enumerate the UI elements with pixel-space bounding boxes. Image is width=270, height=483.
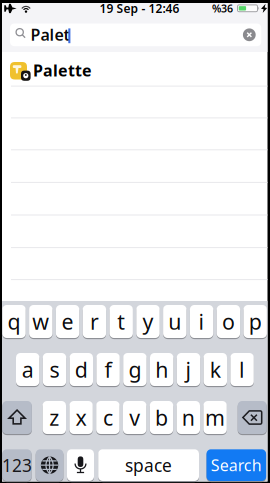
staticText: k bbox=[210, 355, 221, 384]
staticText: c bbox=[103, 403, 113, 432]
button[interactable]: u bbox=[163, 304, 186, 339]
staticText: t bbox=[117, 307, 125, 336]
button[interactable]: p bbox=[243, 304, 267, 339]
button[interactable]: x bbox=[69, 400, 93, 435]
staticText: s bbox=[49, 355, 59, 384]
staticText: w bbox=[32, 307, 49, 336]
staticText: Palette bbox=[33, 60, 92, 81]
button[interactable]: Next keyboard bbox=[36, 448, 63, 482]
button[interactable]: Dictation bbox=[67, 448, 94, 482]
button[interactable]: e bbox=[56, 304, 79, 339]
staticText: 123 bbox=[2, 454, 32, 477]
staticText: d bbox=[75, 355, 88, 384]
staticText: l bbox=[239, 355, 245, 384]
staticText: f bbox=[105, 355, 112, 384]
button[interactable]: c bbox=[96, 400, 120, 435]
button[interactable]: j bbox=[177, 352, 200, 387]
staticText: x bbox=[76, 403, 87, 432]
staticText: v bbox=[129, 403, 140, 432]
button[interactable]: v bbox=[123, 400, 146, 435]
button[interactable]: 123 bbox=[2, 448, 32, 482]
button[interactable]: a bbox=[16, 352, 39, 387]
button[interactable]: r bbox=[83, 304, 106, 339]
staticText: Search bbox=[211, 454, 262, 476]
button[interactable]: s bbox=[43, 352, 66, 387]
staticText: m bbox=[205, 403, 225, 432]
button[interactable]: g bbox=[123, 352, 147, 387]
staticText: i bbox=[199, 307, 205, 336]
button[interactable]: space bbox=[98, 448, 199, 482]
button[interactable]: Clear text bbox=[243, 28, 256, 41]
button[interactable]: o bbox=[217, 304, 240, 339]
staticText: %36 bbox=[212, 1, 233, 15]
staticText: b bbox=[155, 403, 168, 432]
button[interactable]: Shift bbox=[2, 400, 32, 435]
button[interactable]: Palette bbox=[2, 52, 267, 86]
button[interactable]: m bbox=[203, 400, 227, 435]
staticText: p bbox=[249, 307, 262, 336]
staticText: Palet bbox=[30, 24, 69, 45]
button[interactable]: n bbox=[177, 400, 200, 435]
staticText: a bbox=[22, 355, 34, 384]
button[interactable]: z bbox=[43, 400, 66, 435]
staticText: space bbox=[125, 454, 172, 477]
button[interactable]: l bbox=[230, 352, 254, 387]
staticText: z bbox=[49, 403, 59, 432]
button[interactable]: i bbox=[190, 304, 213, 339]
staticText: g bbox=[128, 355, 141, 384]
staticText: q bbox=[7, 307, 20, 336]
button[interactable]: Search bbox=[206, 448, 266, 482]
button[interactable]: t bbox=[109, 304, 133, 339]
staticText: h bbox=[155, 355, 168, 384]
button[interactable]: k bbox=[204, 352, 227, 387]
button[interactable]: b bbox=[150, 400, 173, 435]
staticText: r bbox=[90, 307, 99, 336]
staticText: 19 Sep - 12:46 bbox=[99, 0, 179, 16]
button[interactable]: w bbox=[29, 304, 52, 339]
staticText: u bbox=[168, 307, 181, 336]
button[interactable]: d bbox=[70, 352, 93, 387]
button[interactable]: y bbox=[136, 304, 160, 339]
staticText: y bbox=[142, 307, 153, 336]
button[interactable]: h bbox=[150, 352, 173, 387]
staticText: j bbox=[185, 355, 191, 384]
staticText: o bbox=[222, 307, 235, 336]
staticText: n bbox=[182, 403, 195, 432]
button[interactable]: q bbox=[2, 304, 26, 339]
button[interactable]: f bbox=[96, 352, 120, 387]
button[interactable]: Delete bbox=[238, 400, 267, 435]
staticText: e bbox=[62, 307, 74, 336]
